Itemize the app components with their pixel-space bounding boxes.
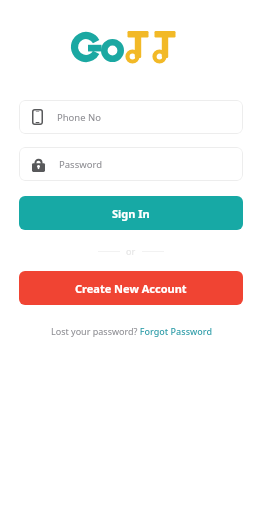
staticText: Lost your password? Forgot Password xyxy=(51,325,212,337)
staticText: Phone No xyxy=(57,111,102,124)
staticText: Create New Account xyxy=(75,281,187,296)
staticText: Password xyxy=(59,158,102,171)
button[interactable]: Phone No xyxy=(19,100,243,134)
staticText: Sign In xyxy=(112,206,150,221)
button[interactable]: Lost your password? Forgot Password xyxy=(47,323,216,339)
button[interactable]: Create New Account xyxy=(19,271,243,305)
button[interactable]: Password xyxy=(19,147,243,181)
button[interactable]: Sign In xyxy=(19,196,243,230)
other: GoToTo logo xyxy=(70,26,192,68)
staticText: or xyxy=(126,245,136,257)
